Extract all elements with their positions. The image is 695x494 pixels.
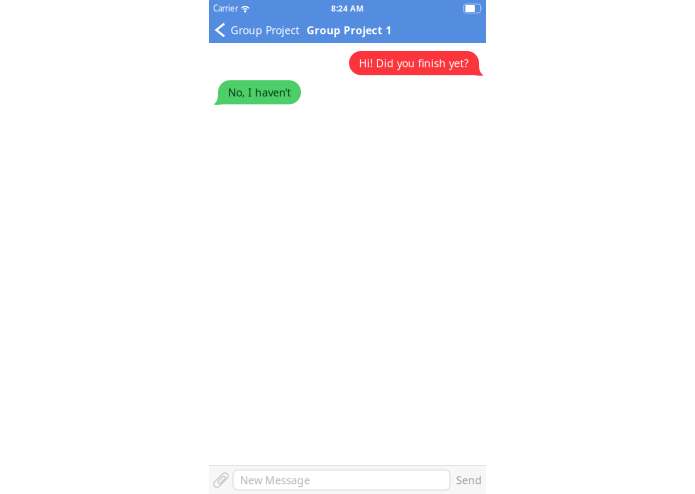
staticText: Hi! Did you finish yet? <box>359 56 469 70</box>
staticText: Send <box>456 473 482 487</box>
button[interactable]: New Message <box>233 470 450 490</box>
button[interactable]: Group Project <box>209 17 302 43</box>
staticText: Group Project 1 <box>307 23 392 37</box>
staticText: New Message <box>240 473 310 487</box>
button[interactable]: Attach <box>209 472 229 488</box>
staticText: No, I haven't <box>228 85 291 99</box>
button[interactable]: Send <box>456 473 486 487</box>
staticText: Carrier <box>213 3 238 14</box>
staticText: Group Project <box>231 23 300 37</box>
staticText: 8:24 AM <box>331 3 364 14</box>
